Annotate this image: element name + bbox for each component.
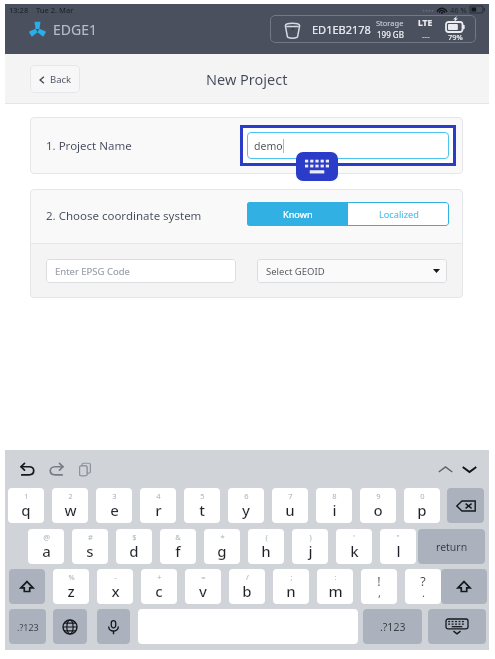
button[interactable]: Hide keyboard <box>458 458 480 480</box>
staticText: Select GEOID <box>266 265 325 278</box>
staticText: p <box>417 500 427 520</box>
staticText: 2. Choose coordinate system <box>46 208 202 224</box>
staticText: Tue 2. Mar <box>36 5 74 15</box>
button[interactable]: & <box>160 529 196 564</box>
button[interactable]: Undo <box>16 458 38 480</box>
button[interactable]: : <box>317 569 353 604</box>
button[interactable]: @ <box>28 529 64 564</box>
button[interactable]: .?123 <box>363 609 422 644</box>
button[interactable]: * <box>204 529 240 564</box>
button[interactable]: Shift <box>9 569 45 604</box>
button[interactable]: Backspace <box>447 488 484 523</box>
button[interactable]: = <box>185 569 221 604</box>
button[interactable]: Localized <box>348 202 449 226</box>
staticText: .?123 <box>17 621 39 633</box>
button[interactable]: % <box>53 569 89 604</box>
staticText: ( <box>265 532 268 542</box>
button[interactable]: 4 <box>140 488 176 523</box>
staticText: Back <box>50 73 72 86</box>
button[interactable]: $ <box>116 529 152 564</box>
staticText: i <box>332 500 337 520</box>
staticText: EDGE1 <box>53 20 97 39</box>
staticText: - <box>114 572 117 582</box>
staticText: 1 <box>24 491 29 501</box>
staticText: ? <box>420 573 426 590</box>
staticText: $ <box>132 532 137 542</box>
staticText: 199 GB <box>377 29 404 40</box>
button[interactable]: Back <box>30 65 80 93</box>
staticText: : <box>334 572 337 582</box>
staticText: return <box>436 540 468 554</box>
staticText: w <box>64 500 77 520</box>
button[interactable]: Known <box>247 202 348 226</box>
staticText: 6 <box>244 491 249 501</box>
staticText: 9 <box>376 491 381 501</box>
staticText: t <box>199 500 205 520</box>
staticText: Storage <box>376 18 404 28</box>
staticText: + <box>157 572 162 582</box>
button[interactable]: Expand keyboard <box>434 458 456 480</box>
staticText: 7 <box>288 491 293 501</box>
button[interactable]: Select GEOID <box>257 259 447 283</box>
button[interactable]: " <box>380 529 416 564</box>
button[interactable]: Voice input <box>97 609 130 644</box>
staticText: k <box>350 541 359 561</box>
button[interactable]: Enter EPSG Code <box>46 259 236 283</box>
button[interactable]: 8 <box>316 488 352 523</box>
button[interactable]: ' <box>336 529 372 564</box>
staticText: h <box>261 541 271 561</box>
button[interactable]: 6 <box>228 488 264 523</box>
button[interactable]: 7 <box>272 488 308 523</box>
button[interactable]: ( <box>248 529 284 564</box>
button[interactable]: + <box>141 569 177 604</box>
button[interactable]: ) <box>292 529 328 564</box>
staticText: 5 <box>200 491 205 501</box>
button[interactable]: return <box>418 529 485 564</box>
button[interactable]: ; <box>273 569 309 604</box>
staticText: g <box>217 541 227 561</box>
staticText: 2 <box>68 491 73 501</box>
staticText: / <box>246 572 249 582</box>
staticText: . <box>422 585 425 600</box>
staticText: 0 <box>420 491 425 501</box>
button[interactable]: 1 <box>8 488 44 523</box>
staticText: Localized <box>379 208 419 221</box>
staticText: v <box>199 581 207 601</box>
staticText: n <box>286 581 296 601</box>
button[interactable]: ED1EB2178 <box>270 15 476 43</box>
button[interactable]: - <box>97 569 133 604</box>
button[interactable]: 3 <box>96 488 132 523</box>
staticText: 3 <box>112 491 117 501</box>
staticText: 8 <box>332 491 337 501</box>
button[interactable]: 5 <box>184 488 220 523</box>
button[interactable]: Dismiss keyboard <box>428 609 486 644</box>
button[interactable]: / <box>229 569 265 604</box>
button[interactable]: .?123 <box>9 609 46 644</box>
staticText: ! <box>377 573 381 590</box>
staticText: .?123 <box>380 620 406 634</box>
button[interactable]: ! <box>361 569 397 604</box>
staticText: 46 % <box>450 5 467 15</box>
staticText: r <box>155 500 162 520</box>
staticText: y <box>242 500 250 520</box>
staticText: d <box>129 541 139 561</box>
button[interactable]: ? <box>405 569 441 604</box>
button[interactable]: 0 <box>404 488 440 523</box>
staticText: 4 <box>156 491 161 501</box>
staticText: % <box>68 572 75 582</box>
staticText: s <box>86 541 94 561</box>
button[interactable]: 9 <box>360 488 396 523</box>
button[interactable]: Redo <box>45 458 67 480</box>
staticText: 1. Project Name <box>46 138 132 154</box>
staticText: demo <box>254 139 283 153</box>
staticText: --- <box>422 31 430 42</box>
button[interactable]: Copy <box>74 458 96 480</box>
staticText: * <box>220 532 225 542</box>
button[interactable]: Change language <box>53 609 87 644</box>
button[interactable]: 2 <box>52 488 88 523</box>
staticText: ' <box>353 532 355 542</box>
button[interactable]: # <box>72 529 108 564</box>
button[interactable]: Show keyboard <box>296 152 338 181</box>
button[interactable]: Shift <box>441 569 487 604</box>
